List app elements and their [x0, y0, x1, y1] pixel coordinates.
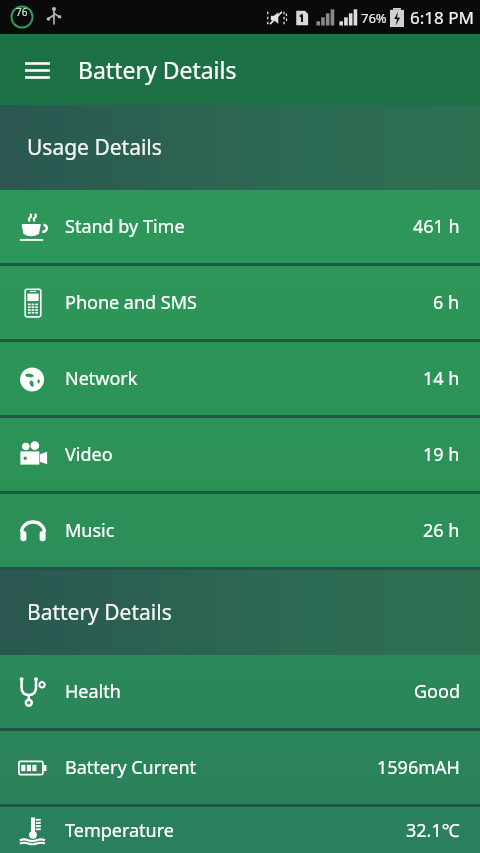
button[interactable]: Temperature — [0, 807, 480, 853]
button[interactable]: Open navigation menu — [14, 47, 60, 93]
staticText: Usage Details — [27, 133, 162, 162]
staticText: Stand by Time — [65, 214, 185, 239]
button[interactable]: Network — [0, 342, 480, 415]
staticText: 76 — [16, 5, 28, 19]
button[interactable]: Stand by Time — [0, 190, 480, 263]
staticText: 6 h — [433, 290, 460, 315]
staticText: 1596mAH — [377, 755, 460, 780]
staticText: 26 h — [423, 518, 460, 543]
staticText: Good — [414, 679, 460, 704]
staticText: Battery Details — [27, 598, 172, 627]
staticText: Battery Current — [65, 755, 197, 780]
staticText: 76% — [361, 9, 387, 27]
staticText: 6:18 PM — [410, 6, 474, 29]
staticText: Music — [65, 518, 115, 543]
button[interactable]: Music — [0, 494, 480, 567]
staticText: 32.1℃ — [406, 818, 460, 843]
staticText: 461 h — [413, 214, 460, 239]
button[interactable]: Battery Current — [0, 731, 480, 804]
staticText: 19 h — [423, 442, 460, 467]
staticText: 14 h — [423, 366, 460, 391]
button[interactable]: Video — [0, 418, 480, 491]
staticText: Temperature — [65, 818, 174, 843]
staticText: Battery Details — [78, 54, 237, 85]
staticText: Video — [65, 442, 113, 467]
button[interactable]: Health — [0, 655, 480, 728]
button[interactable]: Phone and SMS — [0, 266, 480, 339]
staticText: Network — [65, 366, 138, 391]
staticText: Phone and SMS — [65, 290, 197, 315]
staticText: Health — [65, 679, 121, 704]
